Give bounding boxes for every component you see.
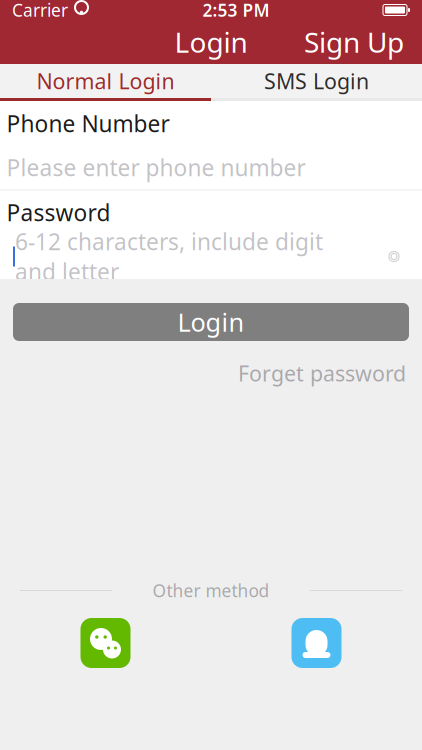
staticText: Please enter phone number [6,152,305,182]
staticText: Carrier [12,0,68,21]
button[interactable]: Normal Login [0,64,211,98]
staticText: SMS Login [264,67,369,95]
button[interactable]: Login [13,303,409,341]
button[interactable]: SMS Login [211,64,422,98]
button[interactable]: Sign in with WeChat [80,618,130,668]
staticText: Phone Number [6,108,169,138]
staticText: Password [6,197,110,227]
staticText: Forget password [238,359,406,387]
button[interactable]: Show password [375,240,413,272]
staticText: Normal Login [36,67,174,95]
staticText: Login [177,305,244,339]
staticText: 6-12 characters, include digit and lette… [15,226,323,287]
staticText: Login [174,23,247,61]
staticText: 2:53 PM [202,0,269,21]
button[interactable]: Sign in with QQ [291,618,341,668]
button[interactable]: Sign Up [292,17,416,67]
staticText: Other method [152,579,269,602]
button[interactable]: Forget password [238,353,406,393]
staticText: Sign Up [304,23,404,61]
